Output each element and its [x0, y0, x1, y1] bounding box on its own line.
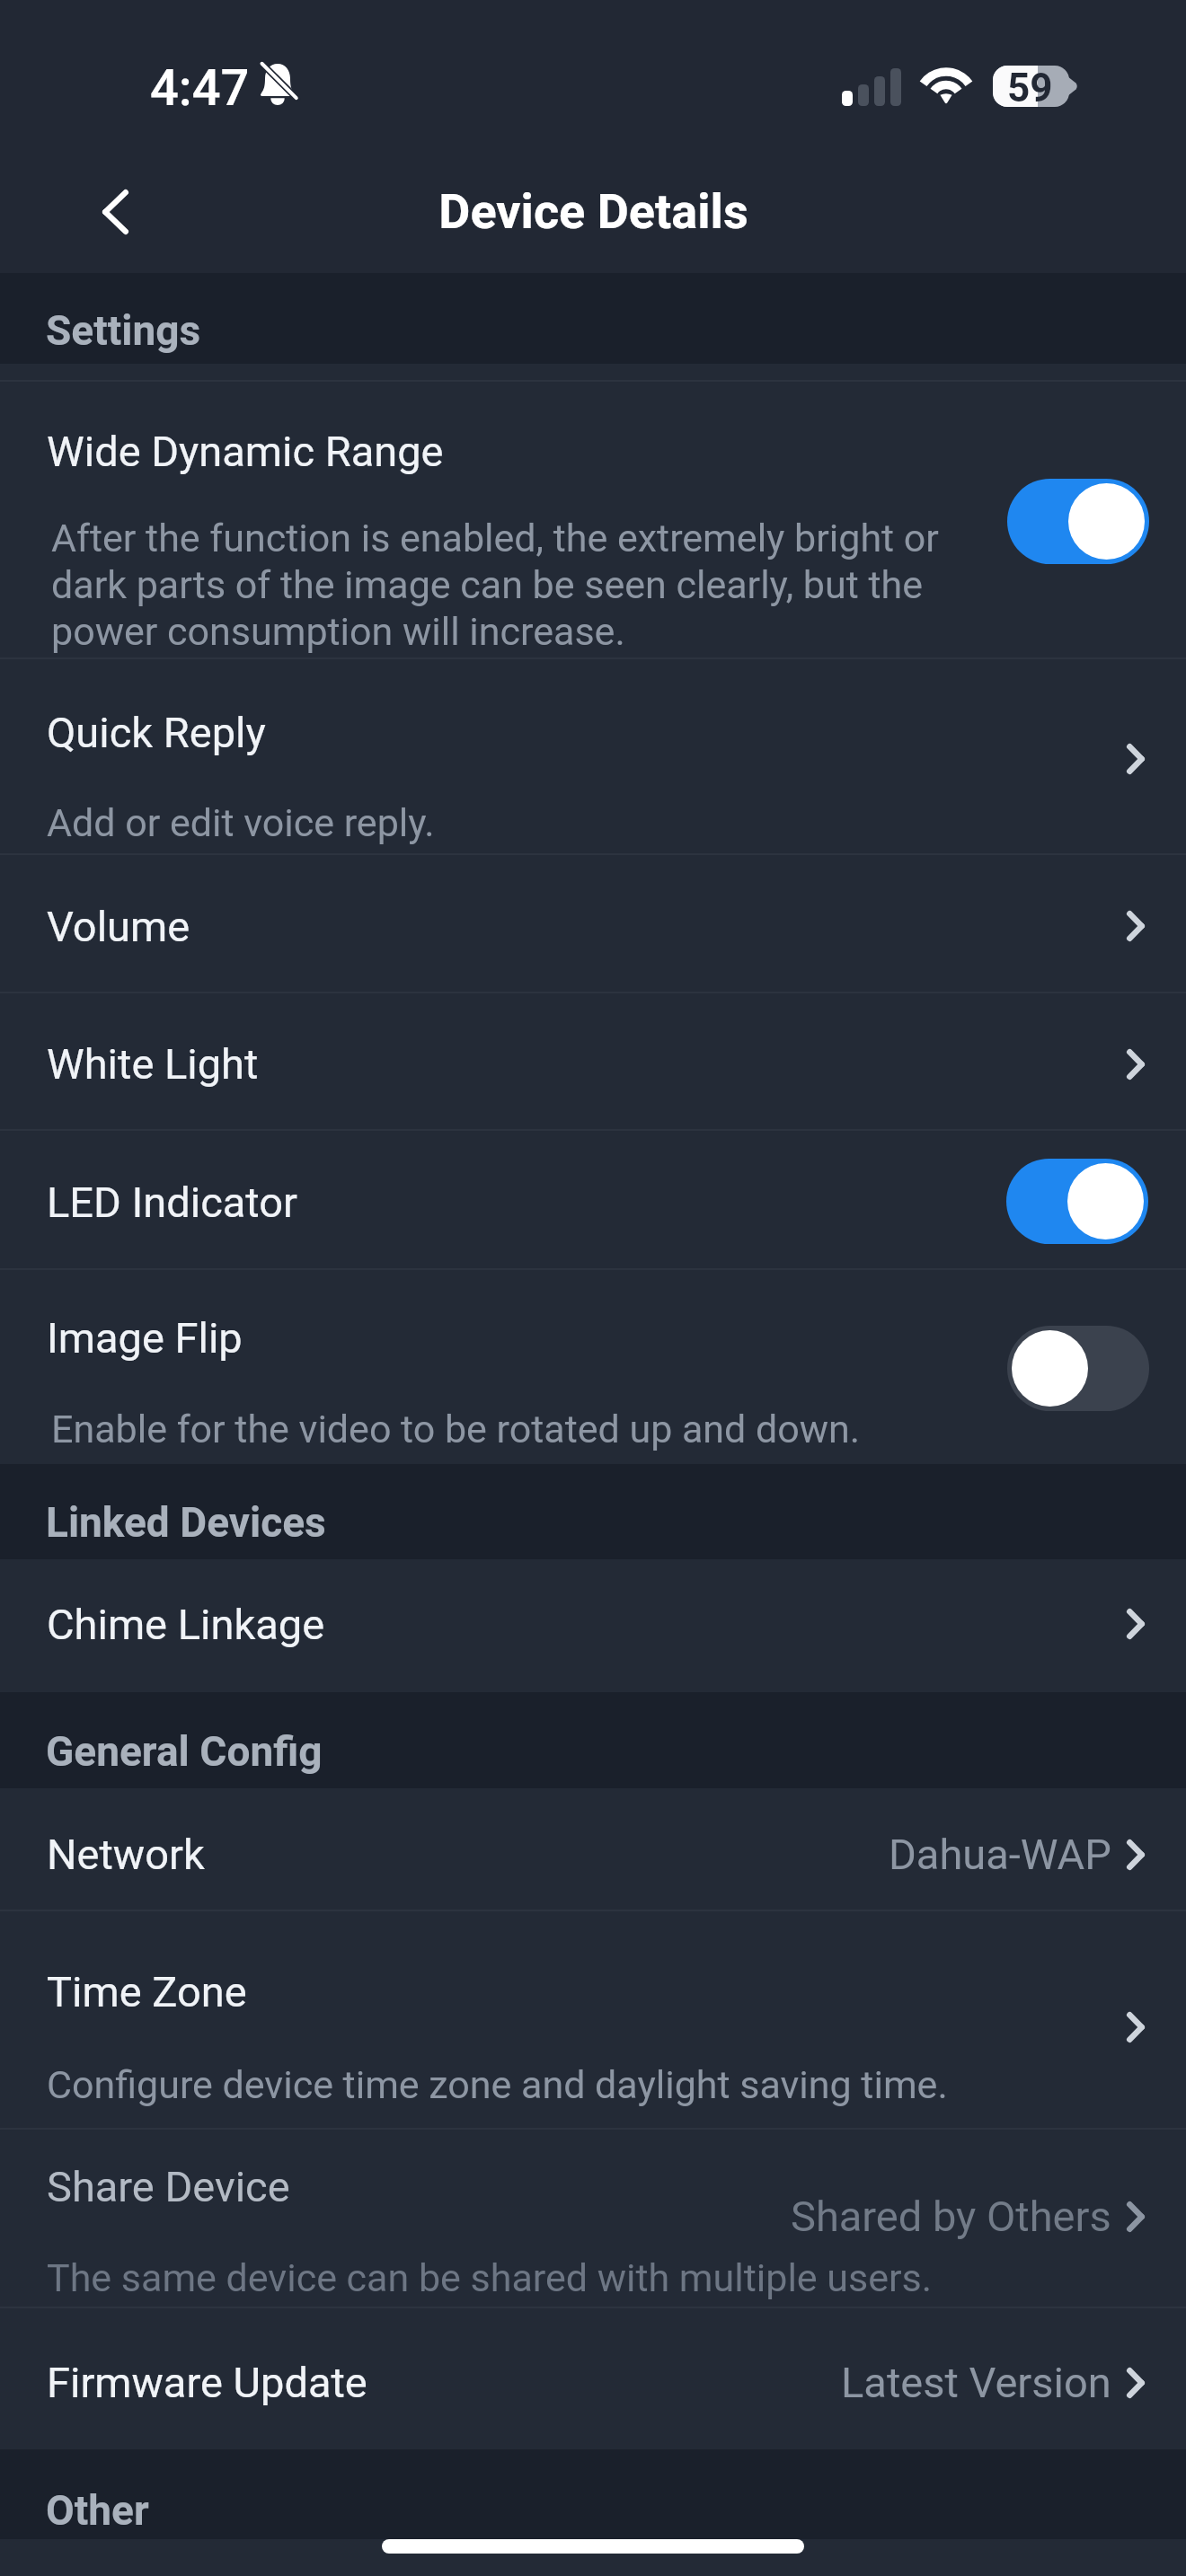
staticText: LED Indicator — [47, 1178, 298, 1227]
staticText: The same device can be shared with multi… — [47, 2255, 933, 2300]
staticText: Network — [47, 1830, 205, 1879]
staticText: 59 — [1007, 65, 1053, 106]
staticText: Other — [46, 2486, 149, 2535]
staticText: Firmware Update — [47, 2358, 367, 2407]
button[interactable]: Back — [70, 167, 160, 257]
staticText: Shared by Others — [791, 2192, 1111, 2241]
staticText: Share Device — [47, 2162, 290, 2211]
button[interactable]: Switch off — [1007, 1326, 1149, 1411]
button[interactable]: LED Indicator — [0, 1131, 1186, 1268]
staticText: Configure device time zone and daylight … — [47, 2062, 948, 2107]
staticText: White Light — [47, 1039, 259, 1089]
staticText: Linked Devices — [46, 1498, 326, 1547]
staticText: Add or edit voice reply. — [47, 800, 435, 845]
staticText: Settings — [46, 306, 201, 355]
staticText: Volume — [47, 902, 190, 951]
button[interactable]: Share Device — [0, 2130, 1186, 2307]
button[interactable]: Network — [0, 1788, 1186, 1910]
staticText: Image Flip — [47, 1313, 243, 1363]
staticText: Chime Linkage — [47, 1600, 325, 1649]
button[interactable]: Time Zone — [0, 1911, 1186, 2128]
button[interactable]: Wide Dynamic Range — [0, 382, 1186, 657]
staticText: Latest Version — [841, 2358, 1111, 2407]
button[interactable]: Switch on — [1006, 1159, 1148, 1244]
staticText: Dahua-WAP — [889, 1830, 1111, 1879]
button[interactable]: White Light — [0, 993, 1186, 1129]
staticText: Quick Reply — [47, 708, 266, 757]
button[interactable]: Switch on — [1007, 479, 1149, 564]
staticText: Wide Dynamic Range — [47, 427, 444, 476]
staticText: Device Details — [438, 183, 748, 240]
button[interactable]: Image Flip — [0, 1270, 1186, 1464]
staticText: General Config — [46, 1727, 323, 1776]
button[interactable]: Volume — [0, 855, 1186, 992]
button[interactable]: Firmware Update — [0, 2308, 1186, 2449]
button[interactable]: Chime Linkage — [0, 1559, 1186, 1692]
staticText: Enable for the video to be rotated up an… — [51, 1407, 861, 1451]
staticText: 4:47 — [150, 58, 250, 118]
button[interactable]: Quick Reply — [0, 659, 1186, 853]
staticText: Time Zone — [47, 1967, 247, 2016]
staticText: After the function is enabled, the extre… — [51, 516, 968, 655]
